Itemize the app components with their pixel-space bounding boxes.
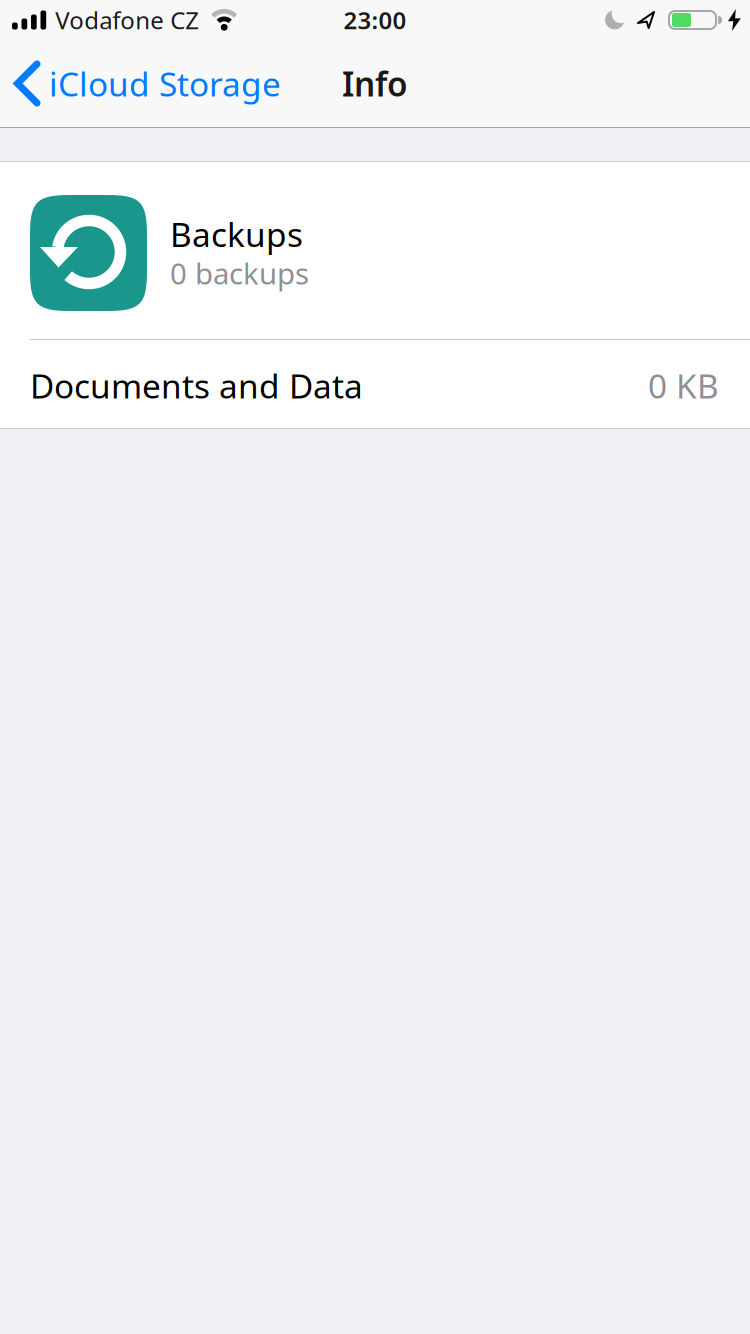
staticText: Vodafone CZ	[55, 4, 199, 36]
staticText: Info	[342, 61, 408, 106]
staticText: 0 backups	[170, 253, 309, 292]
button[interactable]: iCloud Storage	[14, 61, 281, 106]
staticText: 23:00	[343, 4, 406, 36]
staticText: Documents and Data	[30, 363, 363, 408]
staticText: iCloud Storage	[49, 61, 281, 106]
button[interactable]: Backups	[0, 162, 750, 339]
button[interactable]: Documents and Data	[0, 340, 750, 428]
staticText: Backups	[170, 212, 303, 256]
staticText: 0 KB	[648, 363, 719, 408]
